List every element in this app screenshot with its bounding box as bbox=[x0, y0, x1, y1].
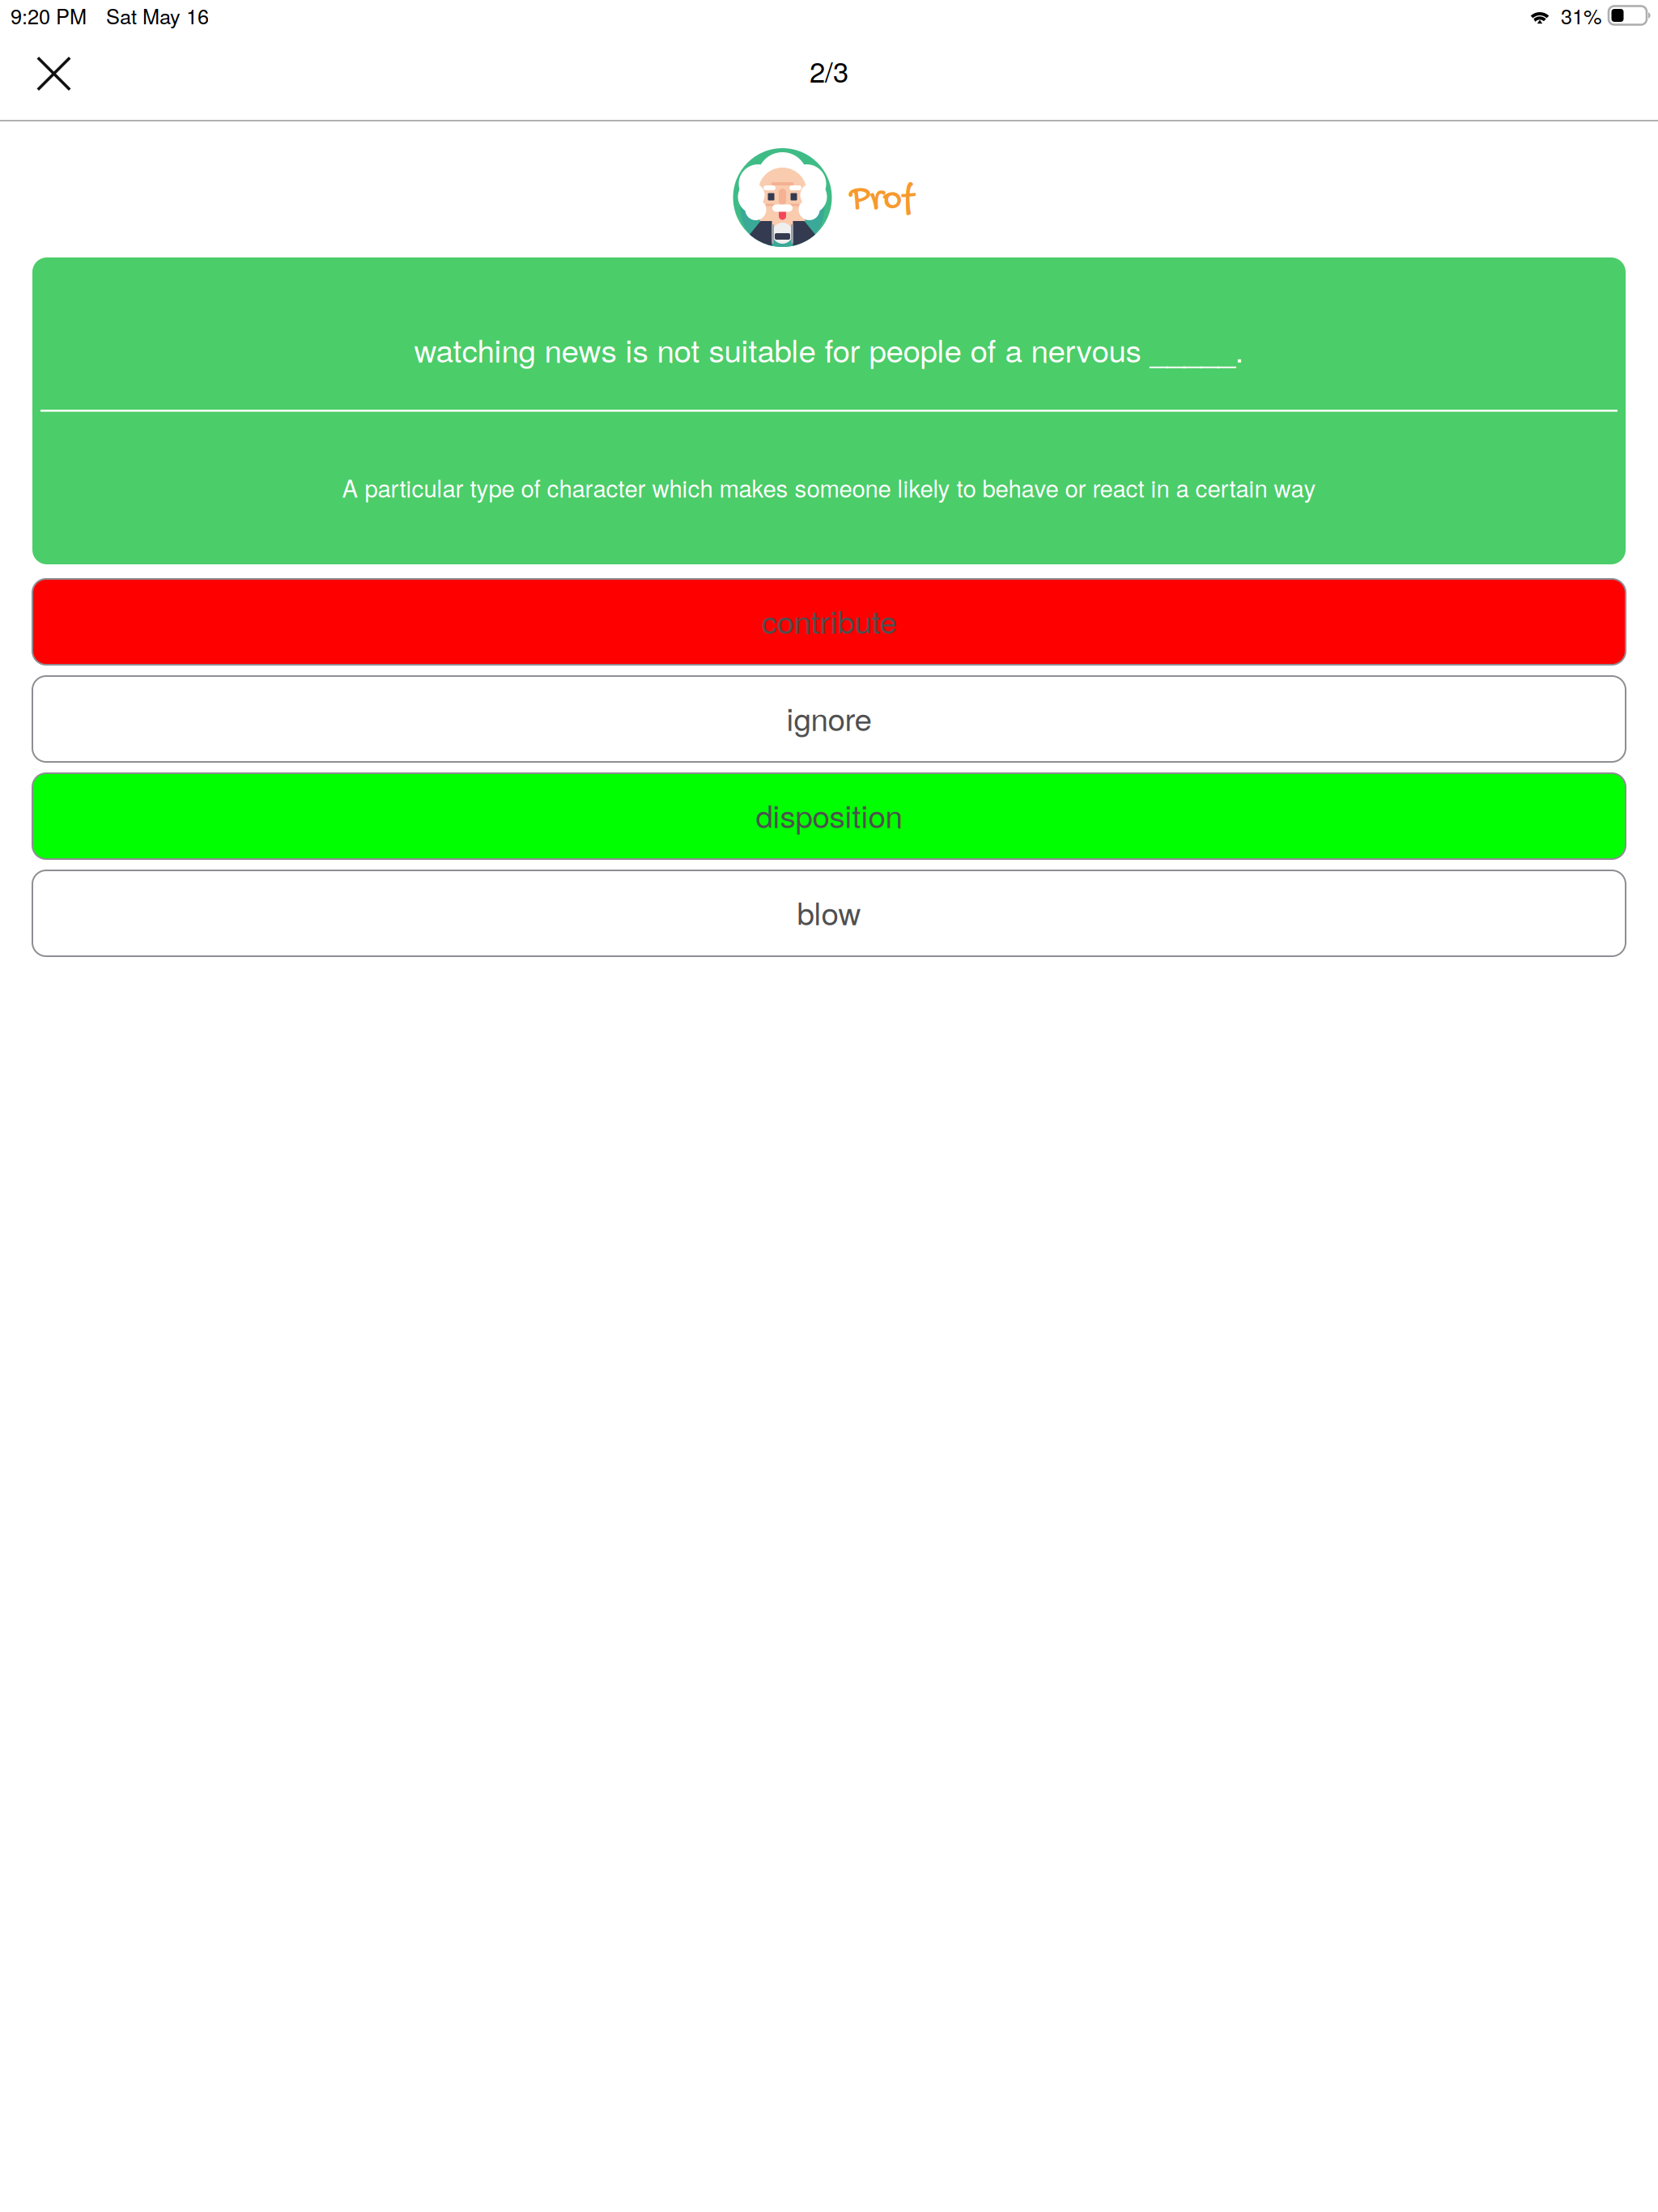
button[interactable]: Close bbox=[0, 32, 96, 120]
button[interactable]: ignore bbox=[32, 676, 1626, 762]
button[interactable]: blow bbox=[32, 870, 1626, 956]
staticText: 2/3 bbox=[810, 50, 848, 91]
staticText: 9:20 PM bbox=[11, 1, 87, 30]
staticText: Prof bbox=[850, 178, 914, 222]
staticText: disposition bbox=[756, 792, 902, 837]
staticText: watching news is not suitable for people… bbox=[414, 327, 1244, 371]
staticText: blow bbox=[797, 889, 861, 934]
staticText: 31% bbox=[1561, 1, 1602, 30]
staticText: A particular type of character which mak… bbox=[342, 470, 1316, 504]
staticText: Sat May 16 bbox=[106, 1, 209, 30]
button[interactable]: disposition bbox=[32, 773, 1626, 859]
staticText: contribute bbox=[761, 598, 897, 643]
button[interactable]: contribute bbox=[32, 579, 1626, 665]
staticText: ignore bbox=[786, 695, 872, 740]
